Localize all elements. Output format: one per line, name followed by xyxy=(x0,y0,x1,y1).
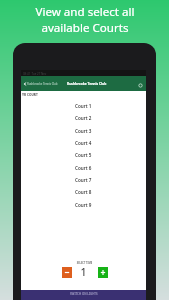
button[interactable]: Court 9 xyxy=(21,199,146,211)
staticText: 1 xyxy=(80,265,87,279)
staticText: Rushbrooke Tennis Club xyxy=(27,82,58,86)
staticText: Court 4 xyxy=(75,140,92,146)
staticText: 08:41 Tue 27 Nov xyxy=(23,72,47,76)
button[interactable]: Back to Rushbrooke Tennis Club xyxy=(23,81,58,87)
button[interactable]: Decrease time xyxy=(62,267,72,278)
staticText: YR COURT xyxy=(22,93,38,97)
staticText: Court 1 xyxy=(75,103,92,109)
button[interactable]: Court 8 xyxy=(21,186,146,198)
button[interactable]: Court 2 xyxy=(21,112,146,124)
button[interactable]: Court 6 xyxy=(21,162,146,174)
staticText: Court 7 xyxy=(75,177,92,183)
button[interactable]: Court 3 xyxy=(21,125,146,137)
staticText: Court 8 xyxy=(75,189,92,195)
staticText: Court 9 xyxy=(75,202,92,208)
button[interactable]: Increase time xyxy=(98,267,108,278)
staticText: Court 2 xyxy=(75,115,92,121)
staticText: Court 3 xyxy=(75,128,92,134)
other: Refresh xyxy=(138,83,143,88)
staticText: SELECT TIME xyxy=(22,261,147,264)
button[interactable]: SWITCH ON LIGHTS xyxy=(21,290,146,300)
staticText: SWITCH ON LIGHTS xyxy=(70,292,98,296)
button[interactable]: Court 7 xyxy=(21,174,146,186)
button[interactable]: Court 4 xyxy=(21,137,146,149)
button[interactable]: Court 1 xyxy=(21,100,146,112)
staticText: Court 5 xyxy=(75,152,92,158)
staticText: Court 6 xyxy=(75,165,92,171)
staticText: available Courts xyxy=(41,20,129,36)
staticText: Rushbrooke Tennis Club xyxy=(67,81,107,85)
staticText: View and select all xyxy=(35,4,135,20)
button[interactable]: Court 5 xyxy=(21,149,146,161)
